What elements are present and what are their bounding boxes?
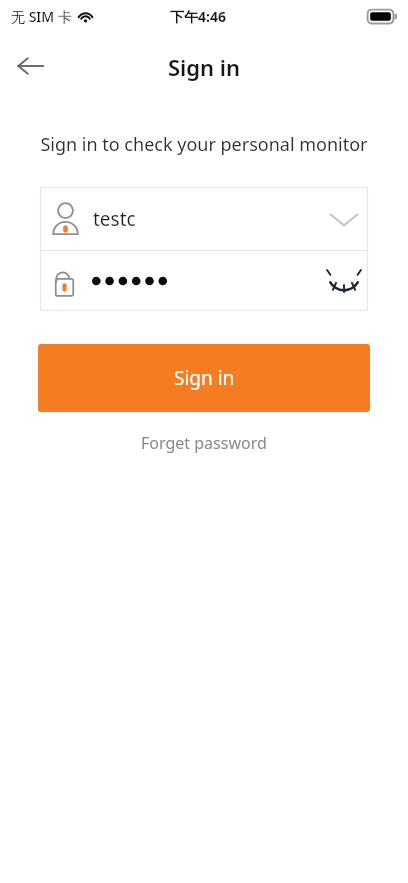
staticText: Sign in <box>168 52 241 82</box>
staticText: 下午4:46 <box>170 7 226 26</box>
button[interactable]: Show password <box>322 259 366 303</box>
button[interactable]: Back <box>8 44 52 88</box>
staticText: Sign in <box>174 365 235 391</box>
button[interactable]: Show password <box>40 251 368 311</box>
button[interactable]: testc <box>40 187 368 250</box>
staticText: testc <box>93 206 136 232</box>
staticText: Forget password <box>141 432 267 454</box>
button[interactable]: Forget password <box>129 428 279 458</box>
button[interactable]: Show account list <box>322 197 366 241</box>
staticText: Sign in to check your personal monitor <box>0 132 408 157</box>
staticText: 无 SIM 卡 <box>11 7 72 26</box>
button[interactable]: Sign in <box>38 344 370 412</box>
